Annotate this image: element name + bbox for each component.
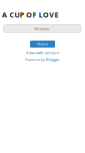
button[interactable]: View web version — [0, 50, 85, 55]
button[interactable]: Home — [30, 41, 55, 48]
button[interactable]: Powered by — [0, 57, 85, 62]
staticText: Blogger — [46, 57, 60, 62]
staticText: View web version — [25, 50, 59, 55]
staticText: A CUP OF LOVE — [2, 10, 58, 20]
staticText: No posts. — [34, 26, 50, 31]
staticText: Powered by — [25, 57, 45, 62]
staticText: Home — [37, 41, 48, 47]
